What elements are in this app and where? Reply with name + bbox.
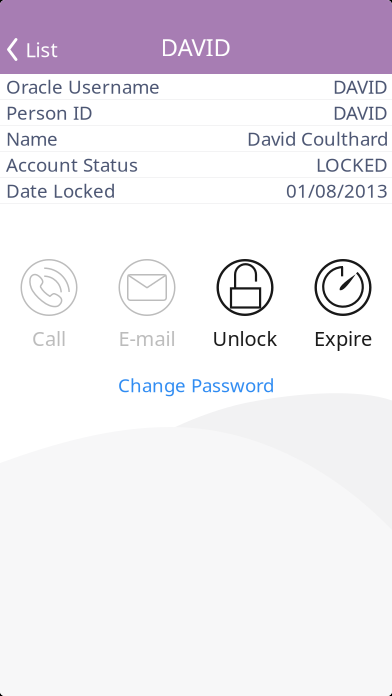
staticText: Account Status — [6, 152, 138, 177]
staticText: E-mail — [118, 325, 175, 352]
button[interactable]: E-mail — [98, 259, 196, 352]
staticText: David Coulthard — [247, 126, 388, 151]
staticText: DAVID — [333, 100, 388, 125]
staticText: Date Locked — [6, 178, 115, 203]
staticText: 01/08/2013 — [286, 178, 388, 203]
button[interactable]: Expire — [294, 259, 392, 352]
staticText: Expire — [314, 325, 372, 352]
staticText: DAVID — [160, 31, 231, 63]
staticText: Unlock — [212, 325, 277, 352]
staticText: Oracle Username — [6, 74, 160, 99]
staticText: LOCKED — [316, 152, 388, 177]
staticText: Change Password — [118, 373, 274, 397]
staticText: DAVID — [333, 74, 388, 99]
staticText: Name — [6, 126, 58, 151]
button[interactable]: Call — [0, 259, 98, 352]
button[interactable]: Unlock — [196, 259, 294, 352]
staticText: List — [25, 36, 57, 63]
button[interactable]: List — [0, 23, 67, 71]
staticText: Person ID — [6, 100, 93, 125]
button[interactable]: Change Password — [106, 369, 286, 401]
staticText: Call — [32, 325, 66, 352]
